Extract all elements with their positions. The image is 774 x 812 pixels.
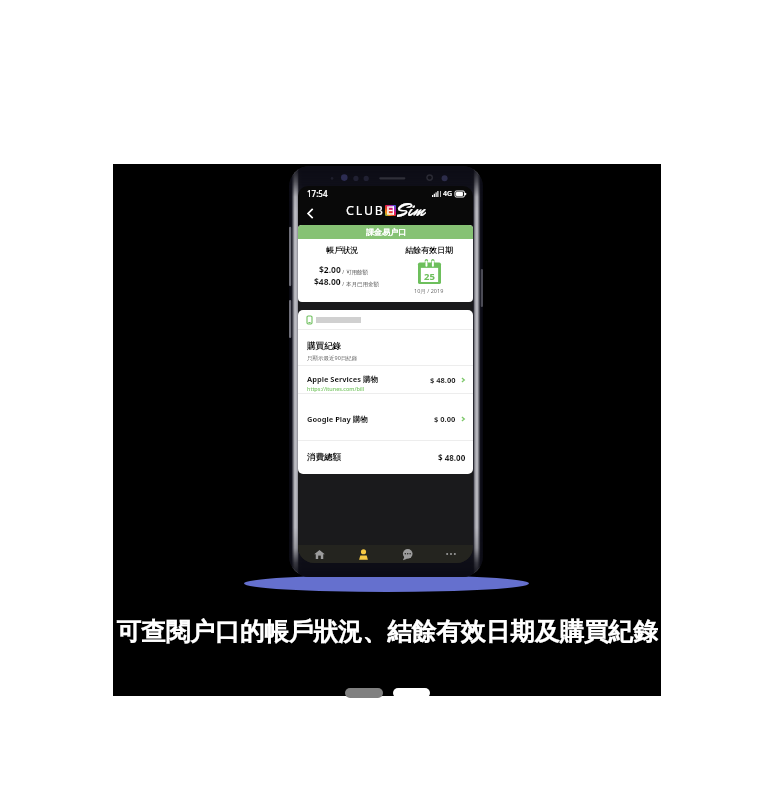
- staticText: /: [341, 281, 346, 288]
- button[interactable]: Account: [341, 545, 385, 563]
- staticText: 消費總額: [307, 452, 341, 463]
- staticText: Google Play 購物: [307, 414, 368, 424]
- staticText: 可用餘額: [346, 269, 368, 276]
- button[interactable]: Back: [299, 202, 321, 224]
- staticText: 10月 / 2019: [414, 287, 444, 295]
- button[interactable]: Apple Services 購物: [298, 366, 473, 393]
- staticText: Apple Services 購物: [307, 374, 378, 384]
- staticText: https://itunes.com/bill: [307, 385, 365, 392]
- staticText: 4G: [443, 189, 453, 199]
- staticText: 帳戶狀況: [326, 245, 358, 255]
- staticText: $ 48.00: [430, 375, 456, 385]
- staticText: 只顯示最近90日紀錄: [307, 354, 358, 362]
- staticText: 25: [424, 270, 435, 283]
- staticText: Sim: [397, 197, 426, 221]
- button[interactable]: Google Play 購物: [298, 394, 473, 440]
- staticText: 購買紀錄: [307, 341, 341, 352]
- staticText: 17:54: [307, 188, 328, 199]
- staticText: $48.00: [314, 276, 341, 288]
- button[interactable]: More: [429, 545, 473, 563]
- staticText: 可查閱户口的帳戶狀況、結餘有效日期及購買紀錄: [113, 616, 661, 647]
- button[interactable]: Chat: [385, 545, 429, 563]
- staticText: $ 48.00: [438, 452, 466, 463]
- staticText: $2.00: [319, 264, 341, 276]
- staticText: /: [341, 269, 346, 276]
- staticText: 課金易户口: [366, 227, 406, 237]
- staticText: $ 0.00: [434, 414, 456, 424]
- staticText: 本月已用金額: [346, 281, 379, 288]
- button[interactable]: Home: [298, 545, 341, 563]
- staticText: CLUB: [346, 202, 385, 219]
- staticText: 結餘有效日期: [405, 245, 453, 255]
